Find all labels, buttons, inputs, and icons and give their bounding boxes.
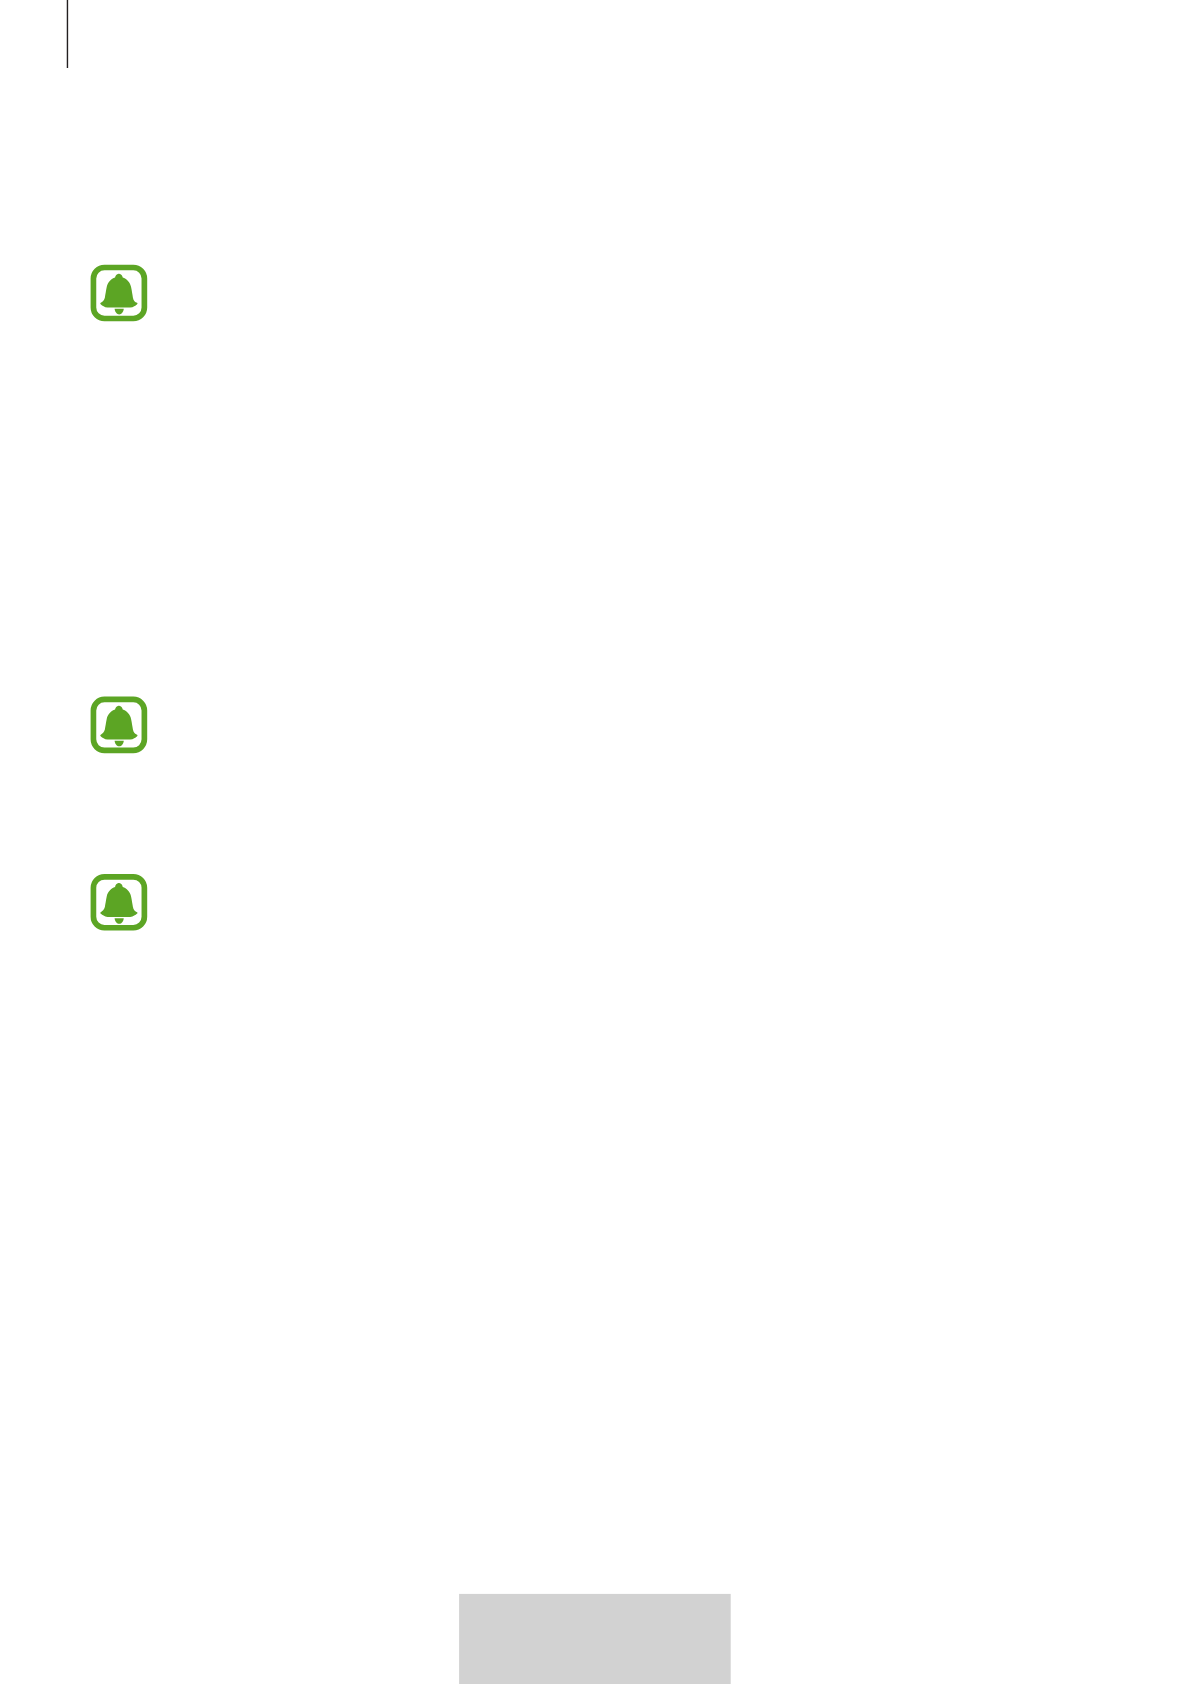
button[interactable]: Notification note 1	[91, 265, 148, 322]
button[interactable]: Notification note 3	[91, 874, 148, 931]
button[interactable]: Notification note 2	[91, 697, 148, 754]
